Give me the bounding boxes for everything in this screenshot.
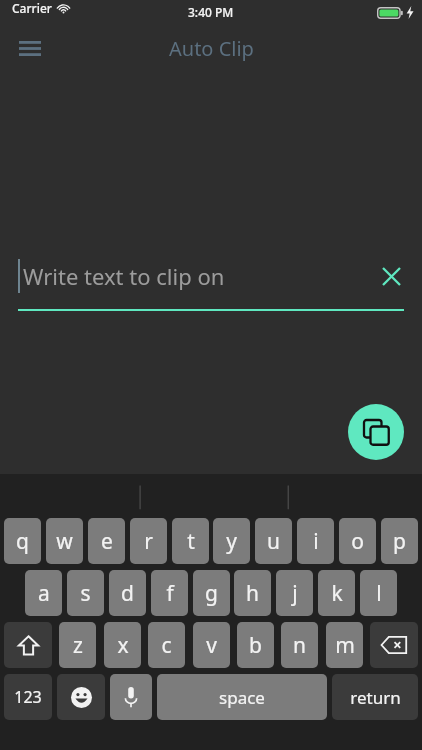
button[interactable]: s (67, 570, 104, 616)
button[interactable]: z (59, 622, 96, 668)
button[interactable]: d (109, 570, 146, 616)
button[interactable]: Menu (10, 28, 50, 68)
button[interactable]: x (104, 622, 141, 668)
staticText: y (226, 527, 237, 556)
staticText: h (246, 579, 259, 608)
button[interactable]: w (46, 518, 83, 564)
button[interactable]: Write text to clip on (18, 254, 408, 298)
button[interactable]: Dictation (110, 674, 152, 720)
staticText: p (393, 527, 406, 556)
button[interactable]: h (234, 570, 271, 616)
button[interactable]: Emoji (57, 674, 105, 720)
button[interactable]: k (318, 570, 355, 616)
button[interactable]: Shift (4, 622, 52, 668)
button[interactable]: u (255, 518, 292, 564)
button[interactable]: Delete (370, 622, 418, 668)
staticText: u (267, 527, 280, 556)
staticText: a (38, 579, 50, 608)
staticText: q (16, 527, 29, 556)
button[interactable]: Copy to clipboard (348, 404, 404, 460)
staticText: space (219, 686, 265, 709)
staticText: b (249, 631, 262, 660)
staticText: v (206, 631, 217, 660)
staticText: 3:40 PM (188, 4, 234, 20)
staticText: f (166, 579, 174, 608)
staticText: Carrier (12, 0, 52, 16)
button[interactable]: c (148, 622, 185, 668)
button[interactable]: 123 (4, 674, 52, 720)
button[interactable]: return (332, 674, 418, 720)
staticText: n (293, 631, 306, 660)
button[interactable]: n (281, 622, 318, 668)
button[interactable]: g (193, 570, 230, 616)
button[interactable]: a (25, 570, 62, 616)
staticText: e (101, 527, 113, 556)
staticText: return (350, 686, 401, 709)
button[interactable]: p (381, 518, 418, 564)
staticText: s (80, 579, 91, 608)
staticText: c (161, 631, 172, 660)
staticText: j (292, 579, 298, 608)
button[interactable]: t (172, 518, 209, 564)
staticText: x (117, 631, 129, 660)
button[interactable]: e (88, 518, 125, 564)
button[interactable]: v (193, 622, 230, 668)
staticText: r (144, 527, 153, 556)
button[interactable]: q (4, 518, 41, 564)
button[interactable]: f (151, 570, 188, 616)
button[interactable]: Clear text (374, 259, 408, 293)
button[interactable]: o (339, 518, 376, 564)
button[interactable]: i (297, 518, 334, 564)
button[interactable]: l (360, 570, 397, 616)
button[interactable]: space (157, 674, 327, 720)
staticText: Auto Clip (169, 35, 254, 62)
staticText: o (351, 527, 364, 556)
staticText: z (73, 631, 83, 660)
staticText: m (335, 631, 355, 660)
staticText: t (187, 527, 195, 556)
button[interactable]: m (326, 622, 363, 668)
staticText: w (56, 527, 73, 556)
button[interactable]: b (237, 622, 274, 668)
staticText: l (376, 579, 382, 608)
button[interactable]: y (213, 518, 250, 564)
staticText: k (331, 579, 343, 608)
staticText: g (205, 579, 218, 608)
staticText: d (121, 579, 134, 608)
staticText: Write text to clip on (23, 261, 225, 291)
button[interactable]: r (130, 518, 167, 564)
staticText: i (313, 527, 319, 556)
staticText: 123 (14, 686, 42, 708)
button[interactable]: j (276, 570, 313, 616)
